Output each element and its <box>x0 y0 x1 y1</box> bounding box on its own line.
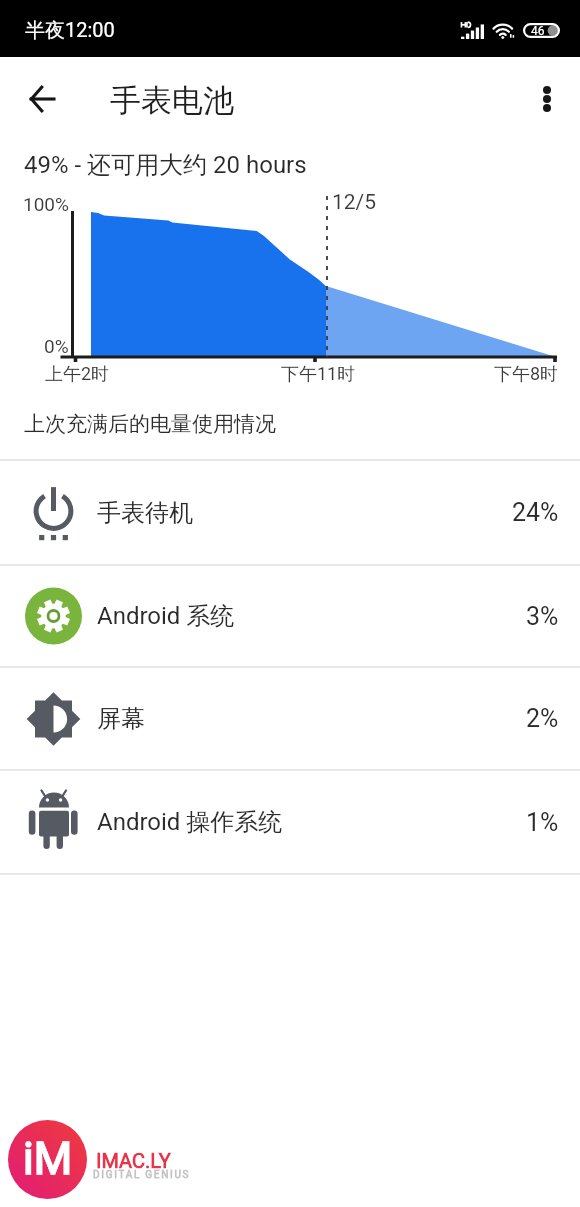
staticText: IMAC.LY <box>96 1149 171 1172</box>
staticText: 100% <box>23 193 69 215</box>
staticText: 12/5 <box>332 190 377 215</box>
staticText: 下午11时 <box>281 363 356 386</box>
staticText: 46 <box>531 24 545 38</box>
staticText: 上午2时 <box>45 363 110 386</box>
staticText: 1% <box>526 808 559 837</box>
staticText: 上次充满后的电量使用情况 <box>24 411 276 437</box>
staticText: iM <box>23 1133 73 1185</box>
staticText: 49% - 还可用大约 20 hours <box>24 150 307 180</box>
staticText: 手表待机 <box>97 498 193 528</box>
staticText: 手表电池 <box>110 81 234 120</box>
staticText: 2% <box>526 704 559 733</box>
button[interactable]: More options <box>523 75 571 123</box>
button[interactable]: Android 操作系统 <box>0 771 580 873</box>
staticText: 半夜12:00 <box>25 18 115 43</box>
button[interactable]: Android 系统 <box>0 566 580 666</box>
staticText: 24% <box>512 498 559 527</box>
staticText: 屏幕 <box>97 704 145 734</box>
staticText: Android 操作系统 <box>97 807 283 837</box>
staticText: 下午8时 <box>494 363 559 386</box>
button[interactable]: 屏幕 <box>0 668 580 769</box>
staticText: 0% <box>44 335 69 357</box>
staticText: Android 系统 <box>97 601 235 631</box>
button[interactable]: 手表待机 <box>0 461 580 564</box>
staticText: DIGITAL GENIUS <box>93 1169 191 1181</box>
staticText: 3% <box>526 602 559 631</box>
button[interactable]: Back <box>18 75 66 123</box>
